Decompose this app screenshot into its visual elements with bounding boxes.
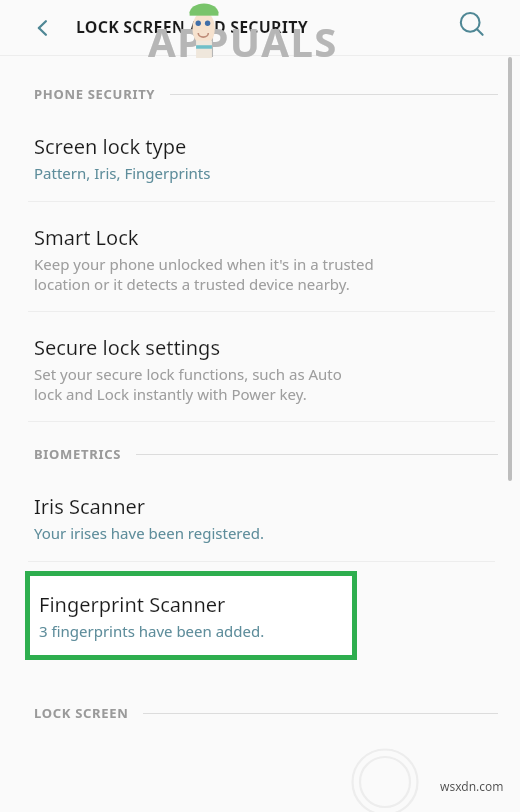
staticText: Your irises have been registered.: [34, 523, 264, 543]
button[interactable]: Iris Scanner: [0, 493, 520, 543]
staticText: APPUALS: [148, 14, 338, 68]
button[interactable]: Search: [450, 3, 494, 47]
staticText: Iris Scanner: [34, 493, 146, 520]
staticText: LOCK SCREEN AND SECURITY: [76, 16, 308, 38]
staticText: PHONE SECURITY: [34, 85, 156, 103]
staticText: Set your secure lock functions, such as …: [34, 364, 342, 404]
button[interactable]: Secure lock settings: [0, 334, 520, 404]
button[interactable]: Screen lock type: [0, 133, 520, 183]
staticText: 3 fingerprints have been added.: [39, 621, 265, 641]
staticText: Screen lock type: [34, 133, 187, 160]
button[interactable]: Back: [20, 5, 66, 51]
staticText: LOCK SCREEN: [34, 704, 129, 722]
staticText: Secure lock settings: [34, 334, 220, 361]
staticText: Keep your phone unlocked when it's in a …: [34, 254, 374, 294]
button[interactable]: Smart Lock: [0, 224, 520, 294]
staticText: Pattern, Iris, Fingerprints: [34, 163, 211, 183]
staticText: wsxdn.com: [440, 778, 504, 794]
staticText: BIOMETRICS: [34, 445, 122, 463]
button[interactable]: Fingerprint Scanner: [30, 576, 352, 655]
staticText: Smart Lock: [34, 224, 139, 251]
staticText: Fingerprint Scanner: [39, 591, 226, 618]
